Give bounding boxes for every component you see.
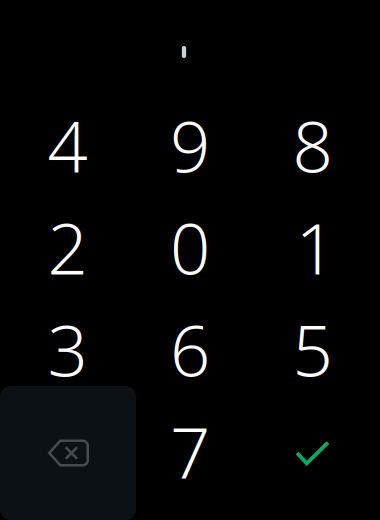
staticText: 3 [47,301,87,397]
staticText: 6 [170,301,210,397]
button[interactable]: 0 [129,196,251,298]
button[interactable]: 5 [251,298,374,400]
button[interactable]: 8 [251,94,374,196]
button[interactable]: 7 [129,400,251,502]
button[interactable]: 4 [6,94,129,196]
button[interactable]: 2 [6,196,129,298]
staticText: 2 [47,199,87,295]
staticText: 4 [47,97,87,193]
staticText: 8 [292,97,332,193]
button[interactable]: 6 [129,298,251,400]
button[interactable]: Delete [6,400,129,502]
staticText: 1 [295,199,335,295]
staticText: 0 [170,199,210,295]
button[interactable]: Confirm [251,400,374,502]
staticText: 9 [170,97,210,193]
button[interactable]: 1 [251,196,374,298]
staticText: 7 [170,403,210,499]
staticText: 5 [292,301,332,397]
button[interactable]: 3 [6,298,129,400]
button[interactable]: 9 [129,94,251,196]
